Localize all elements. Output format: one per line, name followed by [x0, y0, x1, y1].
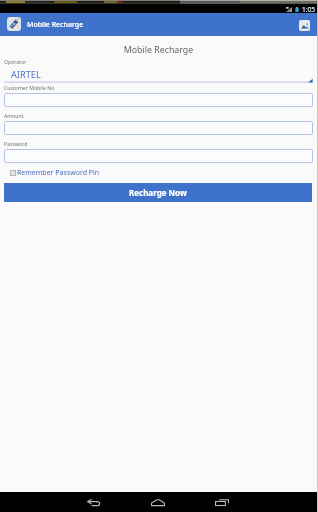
staticText: Operator: [4, 58, 27, 65]
button[interactable]: [4, 149, 313, 163]
button[interactable]: [4, 58, 313, 83]
button[interactable]: Recent apps: [209, 496, 235, 508]
staticText: Password: [4, 140, 28, 147]
button[interactable]: Gallery: [299, 20, 310, 31]
button[interactable]: [4, 93, 313, 107]
staticText: 1:05: [302, 5, 316, 14]
staticText: Mobile Recharge: [27, 20, 84, 30]
button[interactable]: Remember Password Pin: [10, 168, 100, 178]
button[interactable]: [4, 121, 313, 135]
button[interactable]: Back: [81, 496, 107, 508]
staticText: Amount: [4, 112, 24, 119]
staticText: Mobile Recharge: [0, 44, 317, 56]
staticText: Remember Password Pin: [17, 168, 100, 178]
staticText: Customer Mobile No: [4, 84, 55, 91]
staticText: Recharge Now: [129, 187, 187, 198]
button[interactable]: Mobile Recharge app icon: [7, 17, 21, 31]
button[interactable]: Home: [145, 496, 171, 508]
staticText: AIRTEL: [11, 68, 41, 81]
button[interactable]: Recharge Now: [4, 183, 312, 202]
